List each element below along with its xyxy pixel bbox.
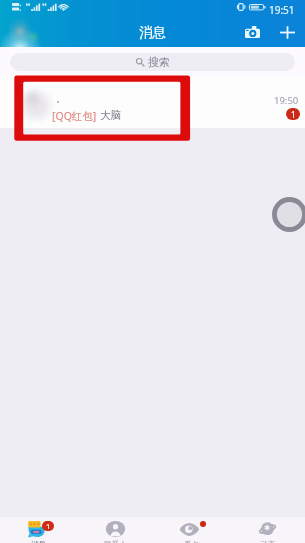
staticText: 19:50: [274, 94, 299, 107]
button[interactable]: 动态: [229, 517, 305, 543]
button[interactable]: Camera: [240, 20, 264, 44]
button[interactable]: 搜索: [10, 53, 295, 71]
staticText: 19:51: [269, 3, 295, 17]
button[interactable]: Profile: [8, 21, 32, 45]
staticText: 消息: [31, 540, 46, 543]
staticText: 消息: [139, 24, 166, 41]
staticText: 看点: [184, 540, 199, 543]
staticText: 动态: [260, 540, 275, 543]
staticText: 1: [46, 521, 51, 531]
staticText: 1: [291, 109, 296, 120]
button[interactable]: [QQ红包]: [0, 75, 305, 128]
button[interactable]: Add: [275, 20, 300, 45]
button[interactable]: 看点: [153, 517, 229, 543]
staticText: 搜索: [148, 55, 170, 69]
staticText: [QQ红包]: [52, 109, 100, 123]
button[interactable]: Assistive touch: [272, 197, 305, 232]
staticText: 联系人: [104, 540, 127, 543]
button[interactable]: 1: [0, 517, 77, 543]
button[interactable]: 联系人: [77, 517, 153, 543]
staticText: 大脑: [100, 109, 121, 122]
